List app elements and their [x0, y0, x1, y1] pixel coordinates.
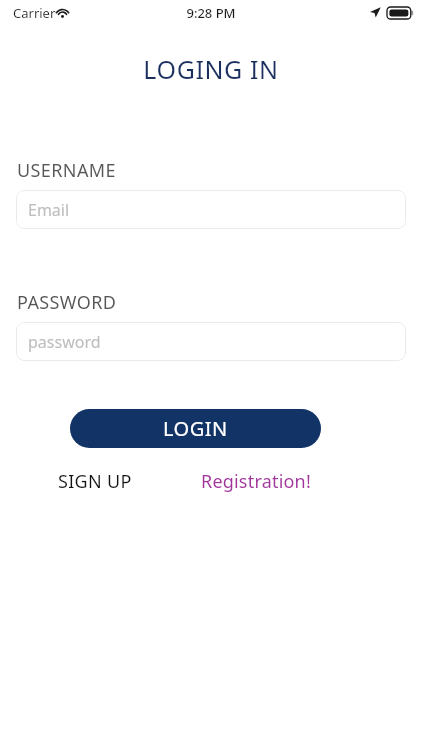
staticText: USERNAME: [17, 158, 116, 183]
button[interactable]: Registration!: [201, 469, 311, 494]
staticText: Registration!: [201, 469, 311, 494]
staticText: PASSWORD: [17, 290, 117, 315]
button[interactable]: Email: [16, 190, 406, 229]
button[interactable]: SIGN UP: [58, 469, 132, 494]
staticText: LOGING IN: [0, 52, 422, 86]
button[interactable]: LOGIN: [70, 409, 321, 448]
button[interactable]: password: [16, 322, 406, 361]
staticText: Email: [28, 199, 70, 221]
staticText: LOGIN: [163, 415, 228, 442]
staticText: Carrier: [13, 4, 56, 22]
staticText: 9:28 PM: [0, 4, 422, 22]
staticText: password: [28, 331, 101, 353]
staticText: SIGN UP: [58, 469, 132, 494]
